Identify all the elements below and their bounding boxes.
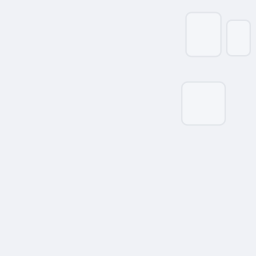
button[interactable]: Widget two: [227, 20, 250, 56]
button[interactable]: Widget three: [182, 82, 225, 125]
button[interactable]: Widget one: [186, 12, 221, 56]
